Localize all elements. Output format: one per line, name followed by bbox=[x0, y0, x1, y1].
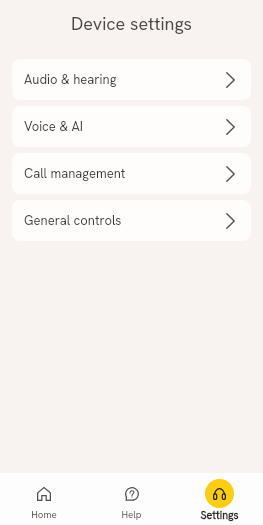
button[interactable]: General controls bbox=[12, 200, 251, 241]
staticText: Help bbox=[121, 508, 142, 521]
button[interactable]: Settings bbox=[175, 473, 263, 525]
staticText: Settings bbox=[200, 508, 239, 522]
staticText: General controls bbox=[24, 212, 122, 229]
button[interactable]: Voice & AI bbox=[12, 106, 251, 147]
button[interactable]: Help bbox=[87, 473, 175, 525]
button[interactable]: Home bbox=[0, 473, 87, 525]
button[interactable]: Call management bbox=[12, 153, 251, 194]
staticText: Device settings bbox=[71, 12, 192, 35]
button[interactable]: Audio & hearing bbox=[12, 59, 251, 100]
staticText: Voice & AI bbox=[24, 118, 83, 135]
staticText: Home bbox=[31, 508, 57, 521]
staticText: Call management bbox=[24, 165, 126, 182]
staticText: Audio & hearing bbox=[24, 71, 117, 88]
